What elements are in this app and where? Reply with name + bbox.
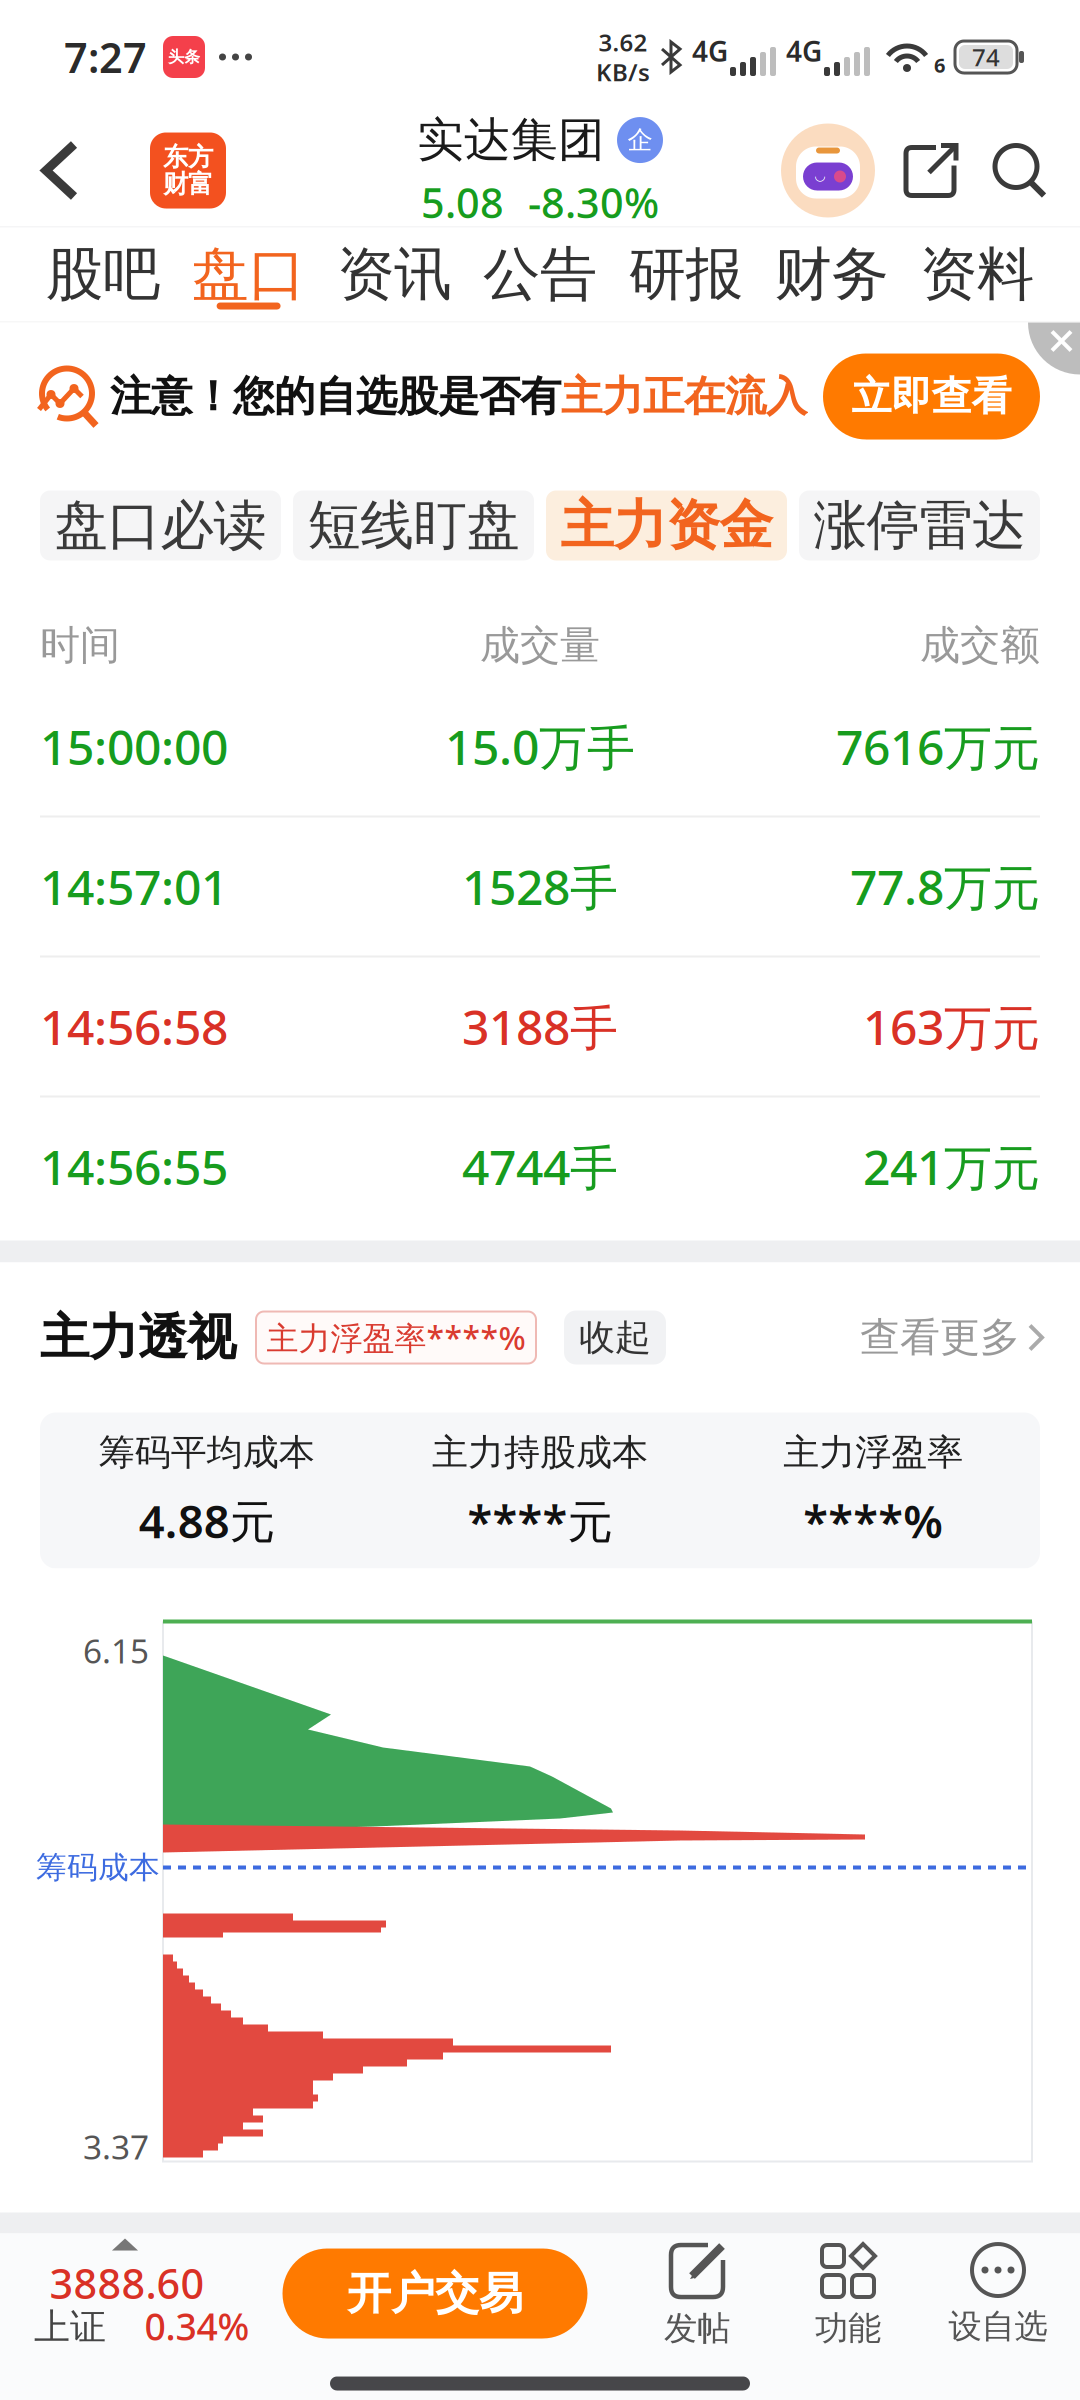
staticText: 主力正在流入: [561, 371, 807, 422]
staticText: 14:56:55: [40, 1135, 228, 1198]
staticText: 15:00:00: [40, 715, 228, 778]
staticText: 15.0万手: [445, 715, 635, 778]
button[interactable]: 盘口必读: [40, 490, 281, 560]
button[interactable]: 设自选: [913, 2233, 1080, 2358]
button[interactable]: 立即查看: [823, 353, 1040, 439]
staticText: 1528手: [462, 855, 618, 918]
staticText: KB/s: [596, 56, 650, 88]
staticText: 开户交易: [347, 2266, 523, 2320]
button[interactable]: 开户交易: [282, 2248, 587, 2338]
staticText: 企: [627, 124, 652, 156]
button[interactable]: 股吧: [30, 227, 176, 321]
staticText: 筹码平均成本: [99, 1430, 315, 1474]
staticText: 7:27: [64, 30, 147, 84]
button[interactable]: 主力资金: [546, 490, 787, 560]
staticText: 短线盯盘: [307, 493, 519, 558]
staticText: 4.88元: [139, 1490, 275, 1551]
staticText: 主力浮盈率: [783, 1430, 963, 1474]
staticText: 14:57:01: [40, 855, 228, 918]
staticText: 主力透视: [40, 1307, 236, 1368]
staticText: 资讯: [337, 239, 451, 310]
staticText: 发帖: [664, 2308, 730, 2349]
button[interactable]: 3888.60: [0, 2233, 260, 2358]
staticText: 4G: [692, 32, 728, 70]
button[interactable]: Search: [992, 123, 1048, 217]
staticText: 3888.60: [49, 2256, 204, 2310]
staticText: 77.8万元: [850, 855, 1040, 918]
staticText: 查看更多: [860, 1313, 1020, 1362]
staticText: 14:56:58: [40, 995, 228, 1058]
staticText: 头条: [168, 47, 200, 67]
button[interactable]: Back: [28, 123, 92, 217]
button[interactable]: 资料: [904, 227, 1050, 321]
staticText: 241万元: [863, 1135, 1040, 1198]
staticText: 3.37: [83, 2124, 149, 2169]
button[interactable]: East Money: [150, 132, 226, 208]
staticText: 盘口: [192, 239, 306, 310]
staticText: 时间: [40, 621, 120, 670]
staticText: 财务: [774, 239, 888, 310]
button[interactable]: 功能: [773, 2233, 923, 2358]
staticText: 研报: [629, 239, 743, 310]
staticText: 163万元: [863, 995, 1040, 1058]
button[interactable]: 涨停雷达: [799, 490, 1040, 560]
staticText: 东方: [163, 141, 213, 172]
button[interactable]: 查看更多: [860, 1313, 1044, 1362]
staticText: 3188手: [462, 995, 618, 1058]
button[interactable]: 资讯: [321, 227, 467, 321]
staticText: 股吧: [46, 239, 160, 310]
staticText: 6: [934, 52, 945, 78]
button[interactable]: 财务: [758, 227, 904, 321]
staticText: 4G: [786, 32, 822, 70]
staticText: 公告: [483, 239, 597, 310]
staticText: 4744手: [462, 1135, 618, 1198]
staticText: 主力浮盈率****%: [266, 1316, 525, 1359]
button[interactable]: AI Assistant: [781, 123, 875, 217]
staticText: 上证: [34, 2305, 106, 2349]
button[interactable]: 盘口: [176, 227, 321, 321]
staticText: 成交额: [920, 621, 1040, 670]
staticText: 6.15: [83, 1628, 149, 1673]
staticText: 主力持股成本: [432, 1430, 648, 1474]
staticText: 涨停雷达: [813, 493, 1025, 558]
staticText: 设自选: [948, 2306, 1047, 2347]
staticText: 收起: [579, 1315, 651, 1360]
staticText: 成交量: [480, 621, 600, 670]
button[interactable]: 研报: [613, 227, 758, 321]
staticText: 3.62: [598, 26, 647, 58]
staticText: 功能: [815, 2308, 881, 2349]
staticText: 5.08: [421, 175, 504, 230]
staticText: 0.34%: [144, 2301, 249, 2351]
staticText: 主力资金: [560, 493, 772, 558]
button[interactable]: 发帖: [622, 2233, 772, 2358]
staticText: ****%: [803, 1490, 943, 1551]
button[interactable]: 收起: [564, 1310, 666, 1364]
staticText: ◡: [815, 168, 825, 183]
button[interactable]: 公告: [467, 227, 613, 321]
staticText: 盘口必读: [54, 493, 266, 558]
staticText: 资料: [920, 239, 1034, 310]
button[interactable]: Close: [1028, 322, 1080, 374]
staticText: 74: [972, 41, 1000, 73]
staticText: 财富: [163, 168, 213, 200]
button[interactable]: Share: [903, 123, 959, 217]
staticText: 注意！您的自选股是否有: [110, 371, 561, 422]
staticText: 实达集团: [417, 111, 605, 169]
staticText: -8.30%: [528, 175, 659, 230]
staticText: 7616万元: [836, 715, 1040, 778]
staticText: 筹码成本: [36, 1849, 160, 1886]
staticText: ****元: [467, 1490, 612, 1551]
button[interactable]: 短线盯盘: [293, 490, 534, 560]
staticText: 立即查看: [851, 372, 1011, 421]
